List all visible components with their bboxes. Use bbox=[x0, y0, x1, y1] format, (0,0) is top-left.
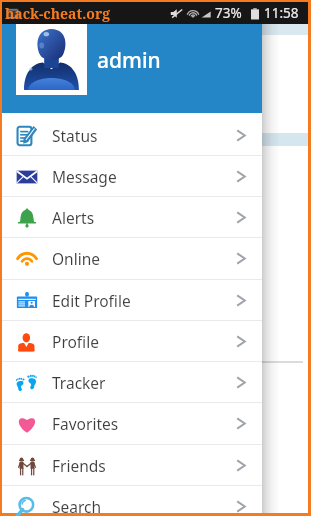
staticText: Profile bbox=[52, 331, 99, 352]
staticText: 11:58 bbox=[264, 4, 299, 22]
other: Profile photo of admin bbox=[16, 24, 87, 95]
button[interactable]: Friends bbox=[2, 445, 262, 486]
button[interactable]: Search bbox=[2, 486, 262, 516]
staticText: Search bbox=[52, 496, 102, 516]
staticText: Alerts bbox=[52, 207, 95, 228]
staticText: Favorites bbox=[52, 413, 119, 434]
staticText: Friends bbox=[52, 455, 106, 476]
staticText: Status bbox=[52, 125, 98, 146]
staticText: 73% bbox=[215, 4, 242, 22]
button[interactable]: Profile photo of admin bbox=[2, 2, 262, 113]
button[interactable]: Message bbox=[2, 156, 262, 197]
staticText: admin bbox=[97, 46, 161, 75]
staticText: Message bbox=[52, 166, 117, 187]
button[interactable]: Favorites bbox=[2, 403, 262, 444]
button[interactable]: Alerts bbox=[2, 197, 262, 238]
staticText: Tracker bbox=[52, 372, 106, 393]
staticText: Online bbox=[52, 248, 101, 269]
button[interactable]: Online bbox=[2, 238, 262, 279]
button[interactable]: Profile bbox=[2, 321, 262, 362]
button[interactable]: Status bbox=[2, 115, 262, 156]
button[interactable]: Tracker bbox=[2, 362, 262, 403]
button[interactable]: Edit Profile bbox=[2, 280, 262, 321]
staticText: Edit Profile bbox=[52, 290, 131, 311]
staticText: hack-cheat.org bbox=[5, 4, 111, 23]
